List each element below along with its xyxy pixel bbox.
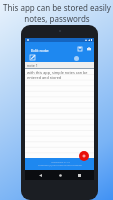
- staticText: with this app, simple notes can be: [27, 70, 88, 75]
- button[interactable]: Save: [77, 46, 83, 52]
- staticText: Edit note: [31, 48, 49, 54]
- staticText: note 1: [27, 63, 38, 68]
- staticText: notes, passwords: [24, 13, 90, 24]
- staticText: This app can be stored easily: [3, 2, 111, 13]
- button[interactable]: Add note: [79, 151, 89, 161]
- staticText: entered and stored: [27, 75, 62, 80]
- button[interactable]: Back: [35, 170, 45, 180]
- button[interactable]: Delete: [86, 46, 92, 52]
- staticText: simplenote v1.10: [51, 161, 70, 164]
- staticText: Copyright (c) 2019-2020 Project Software: [38, 164, 82, 167]
- button[interactable]: Home: [55, 170, 65, 180]
- button[interactable]: Recent apps: [74, 170, 84, 180]
- button[interactable]: Compose: [29, 54, 36, 61]
